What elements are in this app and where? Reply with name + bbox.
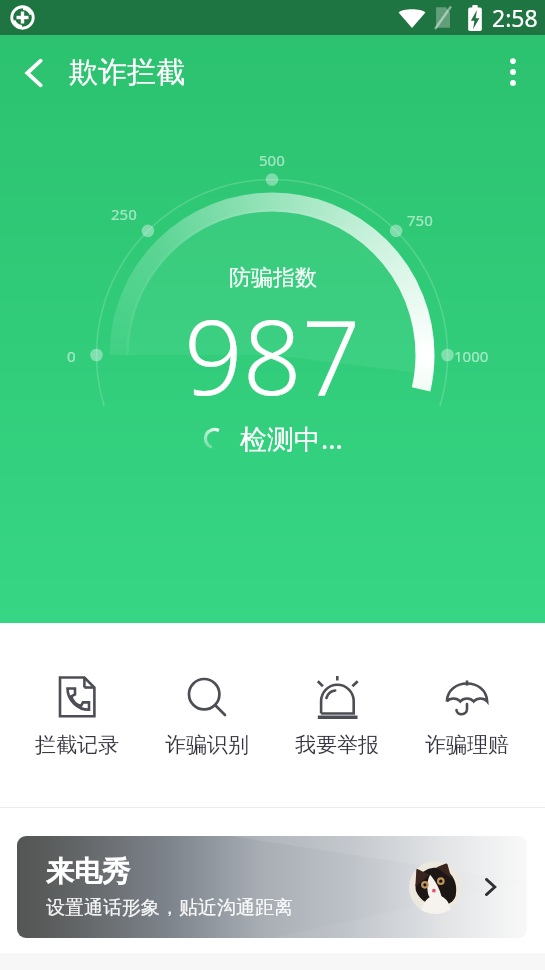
staticText: 来电秀: [46, 854, 130, 889]
staticText: 2:58: [492, 2, 538, 33]
button[interactable]: 我要举报: [272, 623, 402, 807]
staticText: 诈骗理赔: [425, 732, 509, 758]
button[interactable]: 诈骗识别: [142, 623, 272, 807]
staticText: 检测中...: [240, 420, 343, 457]
staticText: 250: [111, 204, 137, 224]
button[interactable]: Open: [473, 870, 507, 904]
staticText: 我要举报: [295, 732, 379, 758]
staticText: 欺诈拦截: [69, 54, 185, 91]
staticText: 拦截记录: [35, 732, 119, 758]
button[interactable]: Back: [0, 39, 67, 106]
staticText: 防骗指数: [229, 264, 317, 292]
staticText: 设置通话形象，贴近沟通距离: [46, 896, 293, 920]
button[interactable]: More options: [481, 40, 545, 104]
staticText: 0: [67, 346, 76, 366]
button[interactable]: 拦截记录: [11, 623, 142, 807]
button[interactable]: 来电秀: [17, 836, 527, 938]
staticText: 诈骗识别: [165, 732, 249, 758]
staticText: 500: [259, 150, 285, 170]
staticText: 750: [407, 210, 433, 230]
staticText: 1000: [454, 346, 489, 366]
button[interactable]: 诈骗理赔: [402, 623, 532, 807]
staticText: 987: [184, 285, 361, 425]
